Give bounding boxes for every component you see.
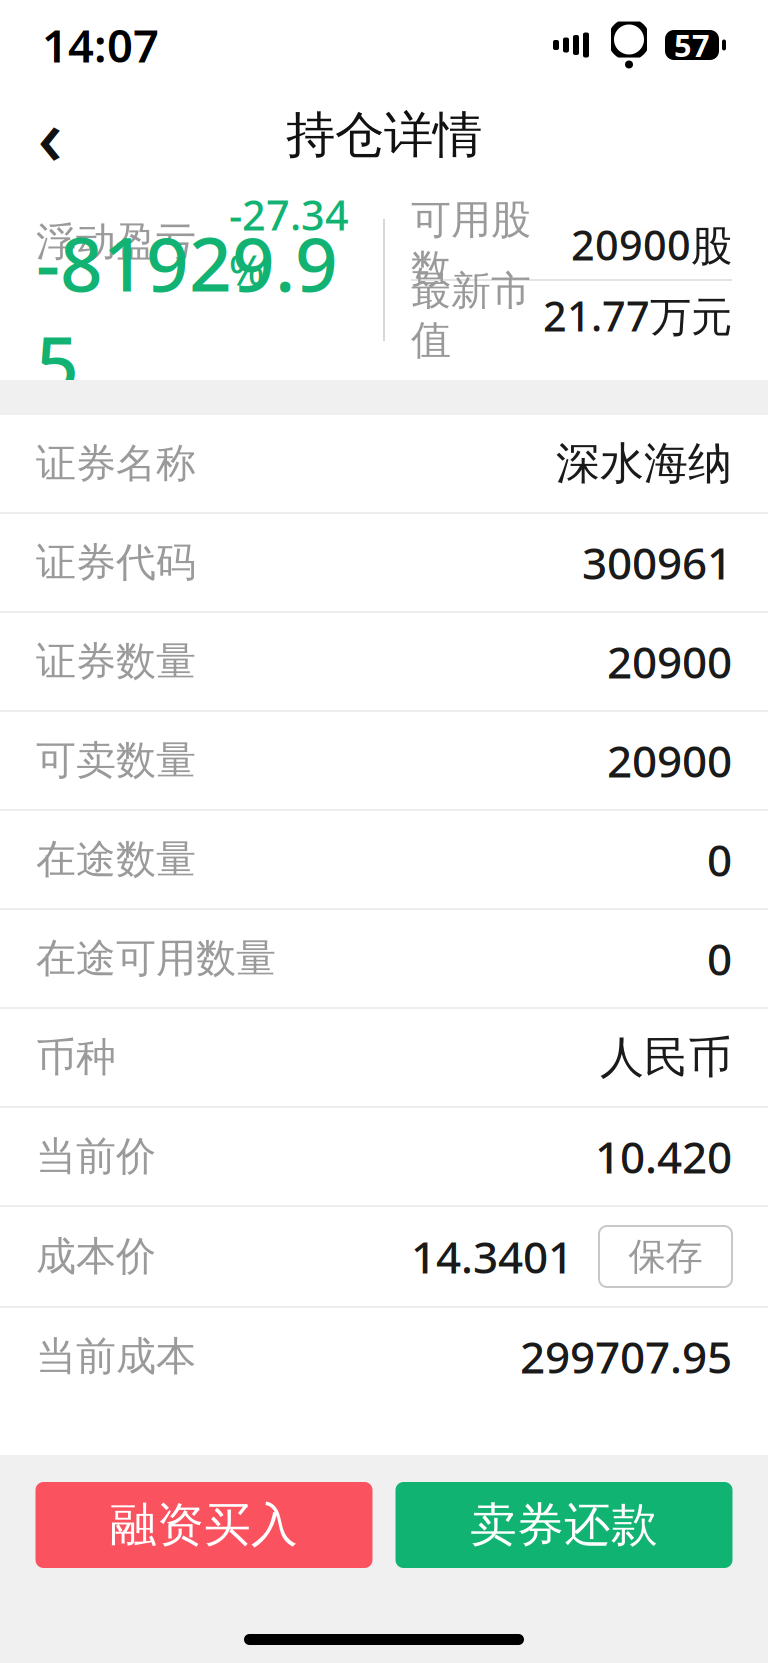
staticText: 人民币: [600, 1030, 732, 1084]
button[interactable]: 当前价: [0, 1108, 768, 1207]
staticText: 保存: [628, 1234, 702, 1279]
staticText: 299707.95: [520, 1327, 732, 1386]
staticText: 证券数量: [36, 637, 196, 686]
staticText: 浮动盈亏: [36, 217, 196, 266]
staticText: 57: [674, 25, 710, 65]
staticText: 币种: [36, 1033, 116, 1082]
button[interactable]: 可卖数量: [0, 712, 768, 811]
button[interactable]: 币种: [0, 1009, 768, 1108]
staticText: 在途可用数量: [36, 934, 276, 983]
button[interactable]: 在途可用数量: [0, 910, 768, 1009]
staticText: 证券代码: [36, 538, 196, 587]
staticText: 证券名称: [36, 439, 196, 488]
button[interactable]: 保存: [599, 1226, 732, 1287]
staticText: 可卖数量: [36, 736, 196, 785]
staticText: 0: [707, 929, 732, 988]
button[interactable]: 在途数量: [0, 811, 768, 910]
staticText: 成本价: [36, 1232, 156, 1281]
staticText: 14.3401: [411, 1227, 573, 1286]
staticText: 20900股: [571, 217, 732, 272]
button[interactable]: 卖券还款: [395, 1482, 732, 1568]
staticText: -81929.95: [36, 213, 338, 411]
button[interactable]: 证券名称: [0, 415, 768, 514]
staticText: 持仓详情: [286, 105, 482, 165]
staticText: -27.34%: [229, 187, 349, 297]
button[interactable]: 证券代码: [0, 514, 768, 613]
staticText: 当前价: [36, 1132, 156, 1181]
staticText: 深水海纳: [556, 436, 732, 490]
button[interactable]: 融资买入: [35, 1482, 372, 1568]
staticText: 300961: [582, 533, 732, 592]
staticText: 可用股数: [411, 195, 531, 294]
staticText: 10.420: [595, 1127, 732, 1186]
button[interactable]: 证券数量: [0, 613, 768, 712]
staticText: 卖券还款: [470, 1496, 658, 1554]
staticText: 20900: [607, 731, 732, 790]
staticText: 0: [707, 830, 732, 889]
staticText: ‹: [37, 84, 62, 186]
staticText: 21.77万元: [543, 288, 732, 343]
staticText: 20900: [607, 632, 732, 691]
staticText: 在途数量: [36, 835, 196, 884]
staticText: 当前成本: [36, 1332, 196, 1381]
staticText: 最新市值: [411, 266, 531, 365]
staticText: 14:07: [42, 15, 159, 75]
staticText: 融资买入: [110, 1496, 298, 1554]
button[interactable]: 返回: [10, 95, 90, 175]
